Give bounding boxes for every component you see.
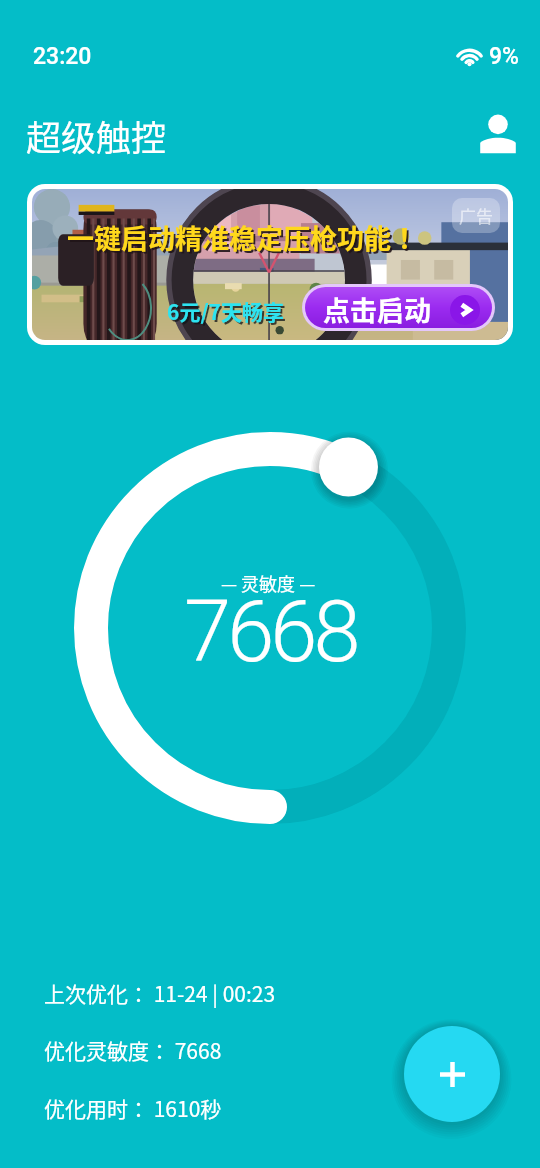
button[interactable]: Add [404,1026,500,1122]
staticText: 广告 [459,203,493,228]
staticText: 一键启动精准稳定压枪功能！ [69,220,420,259]
staticText: — 灵敏度 — [221,570,316,596]
button[interactable]: Account [473,109,523,159]
staticText: 6元/7天畅享 [167,296,284,326]
staticText: 上次优化： 11-24 | 00:23 [44,978,276,1008]
staticText: 超级触控 [26,110,167,161]
staticText: 23:20 [33,43,92,70]
staticText: 6元/7天畅享 [169,298,286,328]
staticText: 一键启动精准稳定压枪功能！ [67,218,418,257]
staticText: 优化用时： 1610秒 [44,1093,222,1123]
staticText: 点击启动 [323,290,431,328]
button[interactable]: 一键启动精准稳定压枪功能！ [32,189,508,340]
staticText: 9% [489,43,519,70]
button[interactable]: 点击启动 [305,287,492,328]
staticText: 7668 [184,582,357,682]
staticText: 优化灵敏度： 7668 [44,1035,222,1065]
